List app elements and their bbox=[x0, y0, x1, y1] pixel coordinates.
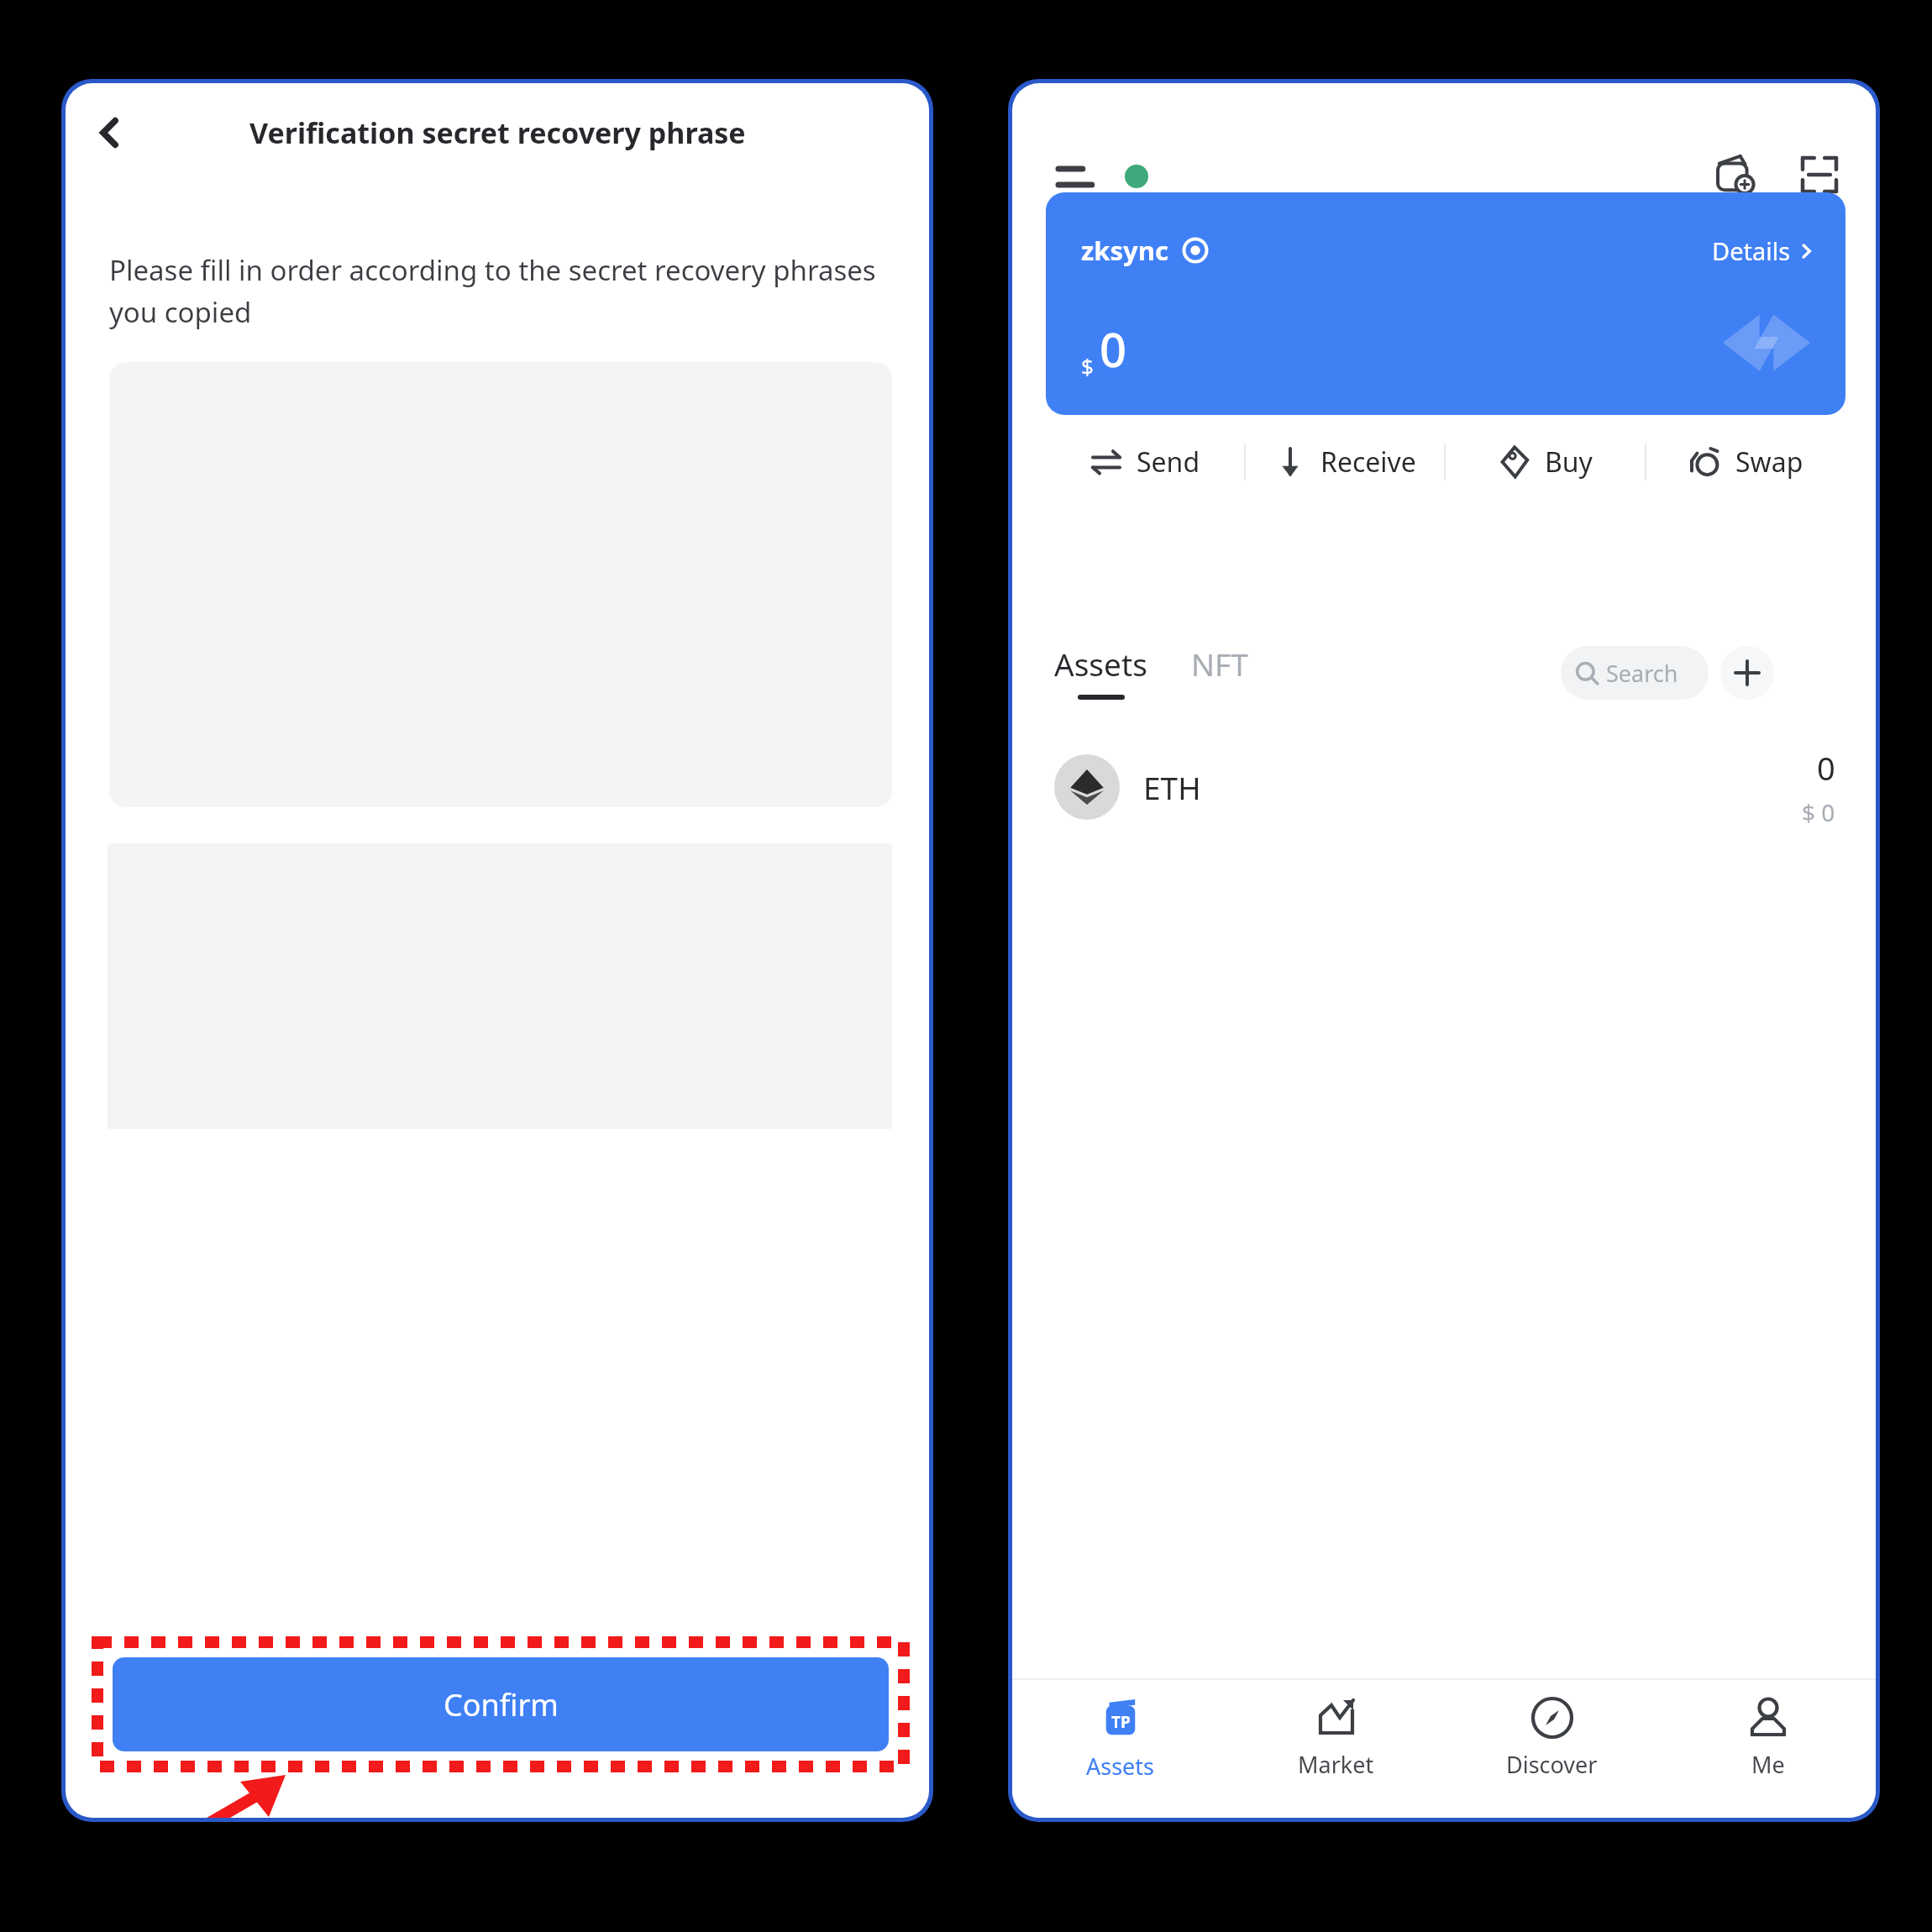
button[interactable]: Me bbox=[1660, 1697, 1876, 1818]
button[interactable]: Market bbox=[1228, 1697, 1444, 1818]
staticText: Details bbox=[1712, 234, 1791, 267]
staticText: Please fill in order according to the se… bbox=[109, 251, 890, 331]
staticText: 0 bbox=[1100, 317, 1127, 381]
staticText: Me bbox=[1751, 1749, 1785, 1780]
staticText: Confirm bbox=[444, 1684, 559, 1725]
button[interactable]: Menu bbox=[1041, 142, 1110, 211]
staticText: Market bbox=[1298, 1749, 1374, 1780]
button[interactable]: Add wallet bbox=[1699, 139, 1772, 211]
staticText: Verification secret recovery phrase bbox=[249, 113, 746, 152]
button[interactable]: Buy bbox=[1446, 415, 1645, 509]
button[interactable]: Confirm bbox=[113, 1657, 889, 1751]
staticText: $ 0 bbox=[1802, 796, 1835, 828]
staticText: Assets bbox=[1086, 1751, 1155, 1782]
staticText: Assets bbox=[1054, 643, 1148, 685]
staticText: Buy bbox=[1545, 444, 1593, 480]
button[interactable]: NFT bbox=[1191, 643, 1248, 685]
button[interactable]: Back bbox=[77, 101, 141, 165]
button[interactable]: Scan bbox=[1783, 139, 1856, 211]
staticText: zksync bbox=[1081, 233, 1168, 268]
staticText: $ bbox=[1081, 351, 1094, 381]
button[interactable]: Send bbox=[1046, 415, 1244, 509]
staticText: TP bbox=[1111, 1711, 1131, 1733]
staticText: ETH bbox=[1143, 766, 1201, 808]
staticText: Discover bbox=[1506, 1749, 1598, 1780]
staticText: 0 bbox=[1817, 746, 1835, 790]
button[interactable]: Assets bbox=[1054, 643, 1148, 700]
button[interactable]: Swap bbox=[1646, 415, 1845, 509]
staticText: Swap bbox=[1735, 444, 1803, 480]
staticText: Receive bbox=[1320, 444, 1416, 480]
button[interactable]: TP bbox=[1012, 1697, 1228, 1818]
button[interactable]: zksync bbox=[1046, 192, 1845, 415]
staticText: Search bbox=[1606, 658, 1678, 689]
button[interactable]: Discover bbox=[1444, 1697, 1660, 1818]
button[interactable]: Add token bbox=[1720, 646, 1774, 700]
staticText: Send bbox=[1137, 444, 1200, 480]
button[interactable]: Details bbox=[1712, 234, 1814, 267]
staticText: NFT bbox=[1191, 643, 1248, 685]
button[interactable]: ETH bbox=[1046, 735, 1845, 839]
button[interactable]: Search bbox=[1561, 646, 1709, 700]
button[interactable]: Receive bbox=[1246, 415, 1444, 509]
